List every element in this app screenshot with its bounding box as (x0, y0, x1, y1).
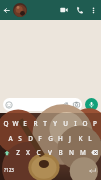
button[interactable]: Enter (85, 160, 99, 180)
button[interactable]: J (65, 131, 75, 145)
button[interactable]: Back (0, 0, 13, 20)
other: Attach (62, 101, 69, 108)
button[interactable]: H (55, 131, 65, 145)
button[interactable]: I (70, 116, 80, 131)
button[interactable]: S (15, 131, 25, 145)
staticText: W (12, 119, 19, 128)
button[interactable]: Q (1, 116, 10, 131)
staticText: F (38, 134, 42, 143)
staticText: X (26, 148, 30, 157)
button[interactable]: Emoji (3, 98, 82, 111)
button[interactable]: K (75, 131, 85, 145)
staticText: Z (16, 148, 20, 157)
staticText: L (88, 134, 92, 143)
button[interactable]: Profile photo (13, 3, 27, 17)
staticText: R (33, 119, 38, 128)
staticText: ?123 (4, 167, 14, 173)
button[interactable]: M (77, 145, 88, 160)
staticText: Y (53, 119, 57, 128)
button[interactable]: L (85, 131, 95, 145)
staticText: D (28, 134, 33, 143)
button[interactable]: O (80, 116, 90, 131)
button[interactable]: Shift (1, 145, 13, 160)
button[interactable]: More options (87, 0, 99, 20)
staticText: T (43, 119, 47, 128)
staticText: H (58, 134, 63, 143)
staticText: V (48, 148, 52, 157)
button[interactable]: E (20, 116, 30, 131)
staticText: N (69, 148, 74, 157)
button[interactable]: T (40, 116, 50, 131)
button[interactable]: W (10, 116, 20, 131)
button[interactable]: F (35, 131, 45, 145)
button[interactable]: Backspace (88, 145, 100, 160)
button[interactable]: Space (16, 160, 85, 180)
other: Emoji (5, 101, 13, 109)
staticText: K (78, 134, 83, 143)
button[interactable]: X (23, 145, 33, 160)
staticText: E (23, 119, 27, 128)
staticText: P (93, 119, 97, 128)
button[interactable]: R (30, 116, 40, 131)
staticText: S (18, 134, 22, 143)
button[interactable]: P (90, 116, 100, 131)
staticText: U (63, 119, 68, 128)
staticText: M (80, 148, 86, 157)
staticText: Q (3, 119, 9, 128)
staticText: A (8, 134, 13, 143)
button[interactable]: Voice call (72, 0, 87, 20)
staticText: J (69, 134, 71, 143)
button[interactable]: C (33, 145, 44, 160)
staticText: B (58, 148, 63, 157)
button[interactable]: ?123 (2, 160, 16, 180)
button[interactable]: Z (13, 145, 23, 160)
other: Camera (73, 101, 80, 108)
button[interactable]: B (55, 145, 66, 160)
staticText: C (36, 148, 41, 157)
staticText: G (48, 134, 53, 143)
button[interactable]: Video call (56, 0, 72, 20)
button[interactable]: A (6, 131, 15, 145)
button[interactable]: Voice message (85, 98, 98, 111)
staticText: O (82, 119, 88, 128)
staticText: I (74, 119, 77, 128)
button[interactable]: V (44, 145, 55, 160)
button[interactable]: G (45, 131, 55, 145)
button[interactable]: U (60, 116, 70, 131)
button[interactable]: D (25, 131, 35, 145)
button[interactable]: Y (50, 116, 60, 131)
button[interactable]: N (66, 145, 77, 160)
